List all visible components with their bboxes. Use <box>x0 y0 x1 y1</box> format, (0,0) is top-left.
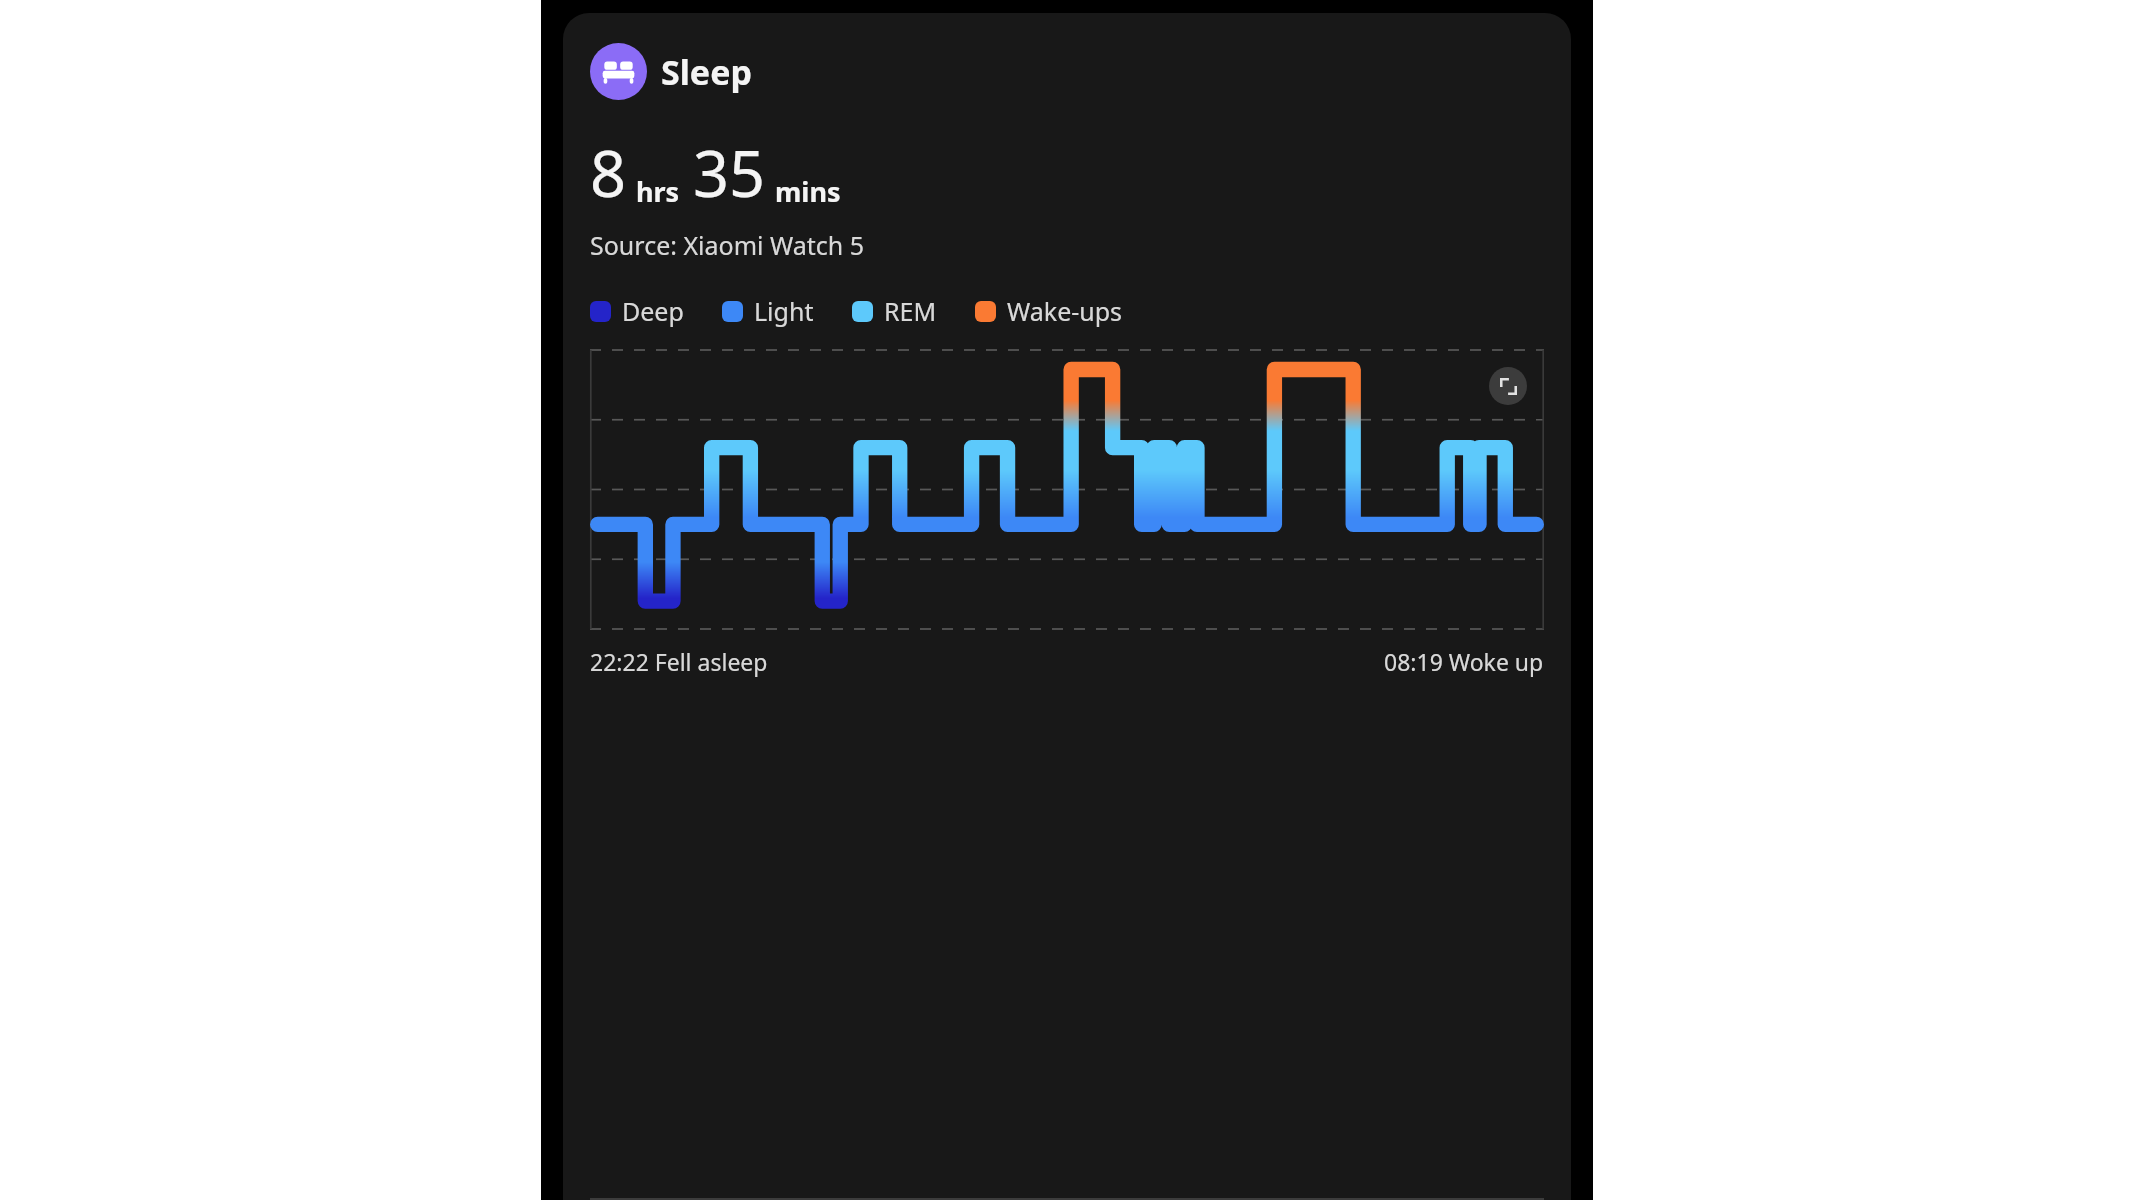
staticText: Wake-ups <box>1007 294 1123 328</box>
button[interactable]: REM <box>852 294 937 328</box>
button[interactable]: Expand chart <box>1489 367 1527 405</box>
staticText: Source: Xiaomi Watch 5 <box>590 228 865 262</box>
staticText: REM <box>884 294 937 328</box>
button[interactable]: Sleep <box>590 43 647 100</box>
staticText: 08:19 Woke up <box>1384 646 1544 677</box>
button[interactable]: Wake-ups <box>975 294 1123 328</box>
staticText: Sleep <box>661 49 752 95</box>
button[interactable]: Light <box>722 294 814 328</box>
staticText: Deep <box>622 294 684 328</box>
staticText: mins <box>775 173 841 210</box>
staticText: 22:22 Fell asleep <box>590 646 768 677</box>
staticText: 35 <box>693 130 766 216</box>
staticText: hrs <box>636 173 680 210</box>
staticText: 8 <box>590 130 627 216</box>
button[interactable]: Deep <box>590 294 684 328</box>
staticText: Light <box>754 294 814 328</box>
